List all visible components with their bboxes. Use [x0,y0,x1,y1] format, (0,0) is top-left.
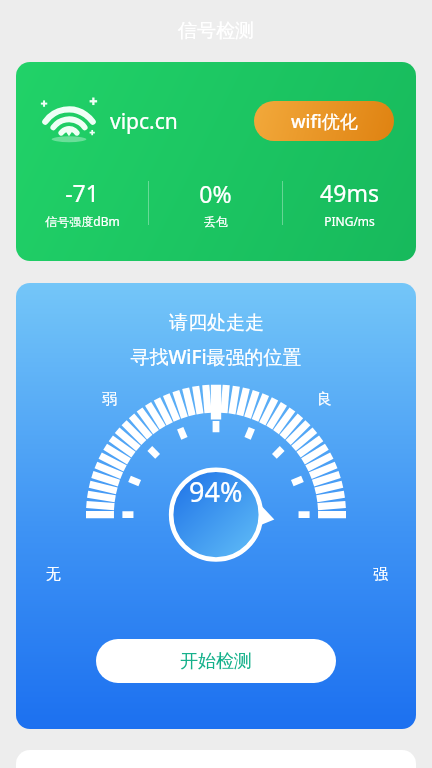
staticText: 94% [189,473,243,510]
staticText: 信号检测 [178,19,254,43]
staticText: 良 [317,390,332,409]
staticText: 无 [46,565,61,584]
staticText: wifi优化 [291,109,358,134]
staticText: -71 [65,177,99,208]
staticText: 信号强度dBm [45,213,120,229]
staticText: 开始检测 [180,650,252,673]
button[interactable]: wifi优化 [254,101,394,141]
staticText: 强 [373,565,388,584]
staticText: vipc.cn [110,107,178,136]
staticText: 寻找WiFi最强的位置 [130,344,302,370]
staticText: 弱 [102,390,117,409]
button[interactable]: 开始检测 [96,639,336,683]
staticText: 丢包 [204,214,228,229]
staticText: 49ms [320,177,379,208]
staticText: 0% [199,178,232,209]
staticText: PING/ms [324,213,375,229]
staticText: 请四处走走 [169,311,264,335]
